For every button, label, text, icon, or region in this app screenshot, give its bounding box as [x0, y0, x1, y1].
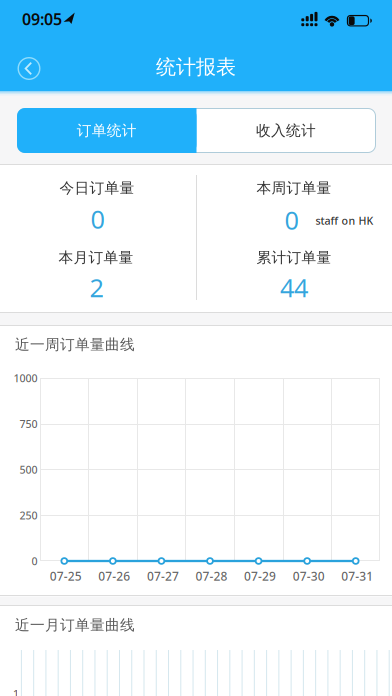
staticText: staff on HK — [315, 213, 373, 228]
staticText: 近一月订单量曲线 — [15, 616, 135, 634]
staticText: 2 — [89, 271, 103, 304]
staticText: 07-31 — [341, 568, 373, 584]
staticText: 07-28 — [195, 568, 227, 584]
staticText: 本周订单量 — [256, 179, 331, 197]
staticText: 订单统计 — [77, 121, 137, 139]
staticText: 收入统计 — [256, 121, 316, 139]
staticText: 07-27 — [147, 568, 179, 584]
staticText: 统计报表 — [156, 55, 236, 79]
staticText: 今日订单量 — [59, 179, 134, 197]
staticText: 1 — [13, 686, 19, 696]
staticText: 44 — [280, 271, 308, 304]
staticText: 1000 — [13, 371, 37, 385]
staticText: 500 — [19, 462, 37, 477]
button[interactable]: 收入统计 — [201, 109, 371, 152]
staticText: 09:05 — [22, 8, 62, 30]
staticText: 07-29 — [244, 568, 276, 584]
staticText: 0 — [90, 202, 104, 236]
staticText: 近一周订单量曲线 — [15, 335, 135, 353]
staticText: 750 — [19, 417, 37, 431]
staticText: 07-25 — [50, 568, 82, 584]
staticText: 本月订单量 — [58, 248, 133, 266]
staticText: 07-30 — [293, 568, 325, 584]
staticText: 250 — [19, 508, 37, 522]
staticText: 累计订单量 — [256, 248, 331, 266]
staticText: 0 — [284, 203, 298, 237]
staticText: 07-26 — [98, 568, 130, 584]
button[interactable]: Back — [17, 56, 41, 80]
button[interactable]: 订单统计 — [17, 108, 196, 153]
staticText: 0 — [31, 554, 37, 568]
